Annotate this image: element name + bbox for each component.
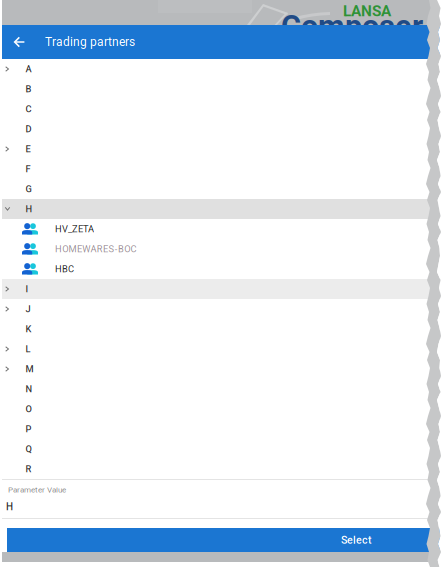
- staticText: H: [6, 501, 13, 513]
- button[interactable]: I: [2, 279, 440, 299]
- staticText: HBC: [55, 263, 74, 274]
- button[interactable]: H: [2, 199, 440, 219]
- staticText: LANSA: [343, 2, 391, 20]
- button[interactable]: F: [2, 159, 440, 179]
- staticText: HV_ZETA: [55, 223, 94, 234]
- staticText: H: [25, 203, 32, 214]
- button[interactable]: B: [2, 79, 440, 99]
- button[interactable]: A: [2, 59, 440, 79]
- staticText: O: [25, 403, 31, 414]
- button[interactable]: L: [2, 339, 440, 359]
- button[interactable]: N: [2, 379, 440, 399]
- button[interactable]: M: [2, 359, 440, 379]
- button[interactable]: HOMEWARES-BOC: [2, 239, 440, 259]
- staticText: B: [25, 83, 31, 94]
- staticText: C: [25, 103, 31, 114]
- staticText: Trading partners: [45, 35, 135, 49]
- staticText: E: [25, 143, 30, 154]
- staticText: R: [25, 463, 31, 474]
- button[interactable]: K: [2, 319, 440, 339]
- button[interactable]: HV_ZETA: [2, 219, 440, 239]
- button[interactable]: E: [2, 139, 440, 159]
- button[interactable]: Select: [7, 528, 440, 552]
- button[interactable]: P: [2, 419, 440, 439]
- button[interactable]: J: [2, 299, 440, 319]
- staticText: I: [25, 283, 28, 294]
- staticText: Parameter Value: [8, 485, 66, 494]
- staticText: Select: [341, 534, 372, 546]
- button[interactable]: Q: [2, 439, 440, 459]
- staticText: D: [25, 123, 31, 134]
- staticText: Composer: [281, 8, 423, 44]
- staticText: G: [25, 183, 31, 194]
- button[interactable]: G: [2, 179, 440, 199]
- staticText: F: [25, 163, 30, 174]
- button[interactable]: O: [2, 399, 440, 419]
- staticText: K: [25, 323, 31, 334]
- button[interactable]: C: [2, 99, 440, 119]
- button[interactable]: HBC: [2, 259, 440, 279]
- button[interactable]: R: [2, 459, 440, 479]
- staticText: M: [25, 363, 33, 374]
- staticText: N: [25, 383, 32, 394]
- staticText: L: [25, 343, 30, 354]
- button[interactable]: Trading partners: [2, 25, 440, 59]
- staticText: J: [25, 303, 30, 314]
- staticText: HOMEWARES-BOC: [55, 243, 137, 254]
- button[interactable]: D: [2, 119, 440, 139]
- staticText: P: [25, 423, 31, 434]
- staticText: A: [25, 63, 31, 74]
- staticText: Q: [25, 443, 31, 454]
